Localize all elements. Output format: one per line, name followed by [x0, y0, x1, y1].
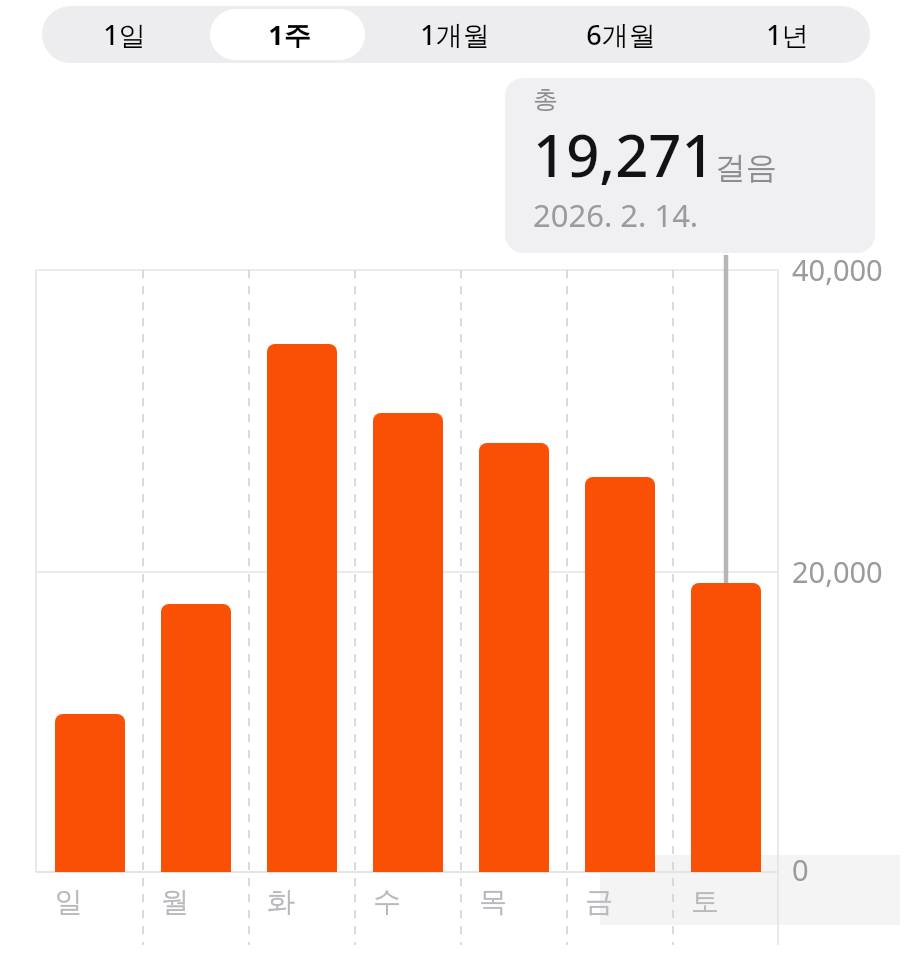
staticText: 0: [792, 850, 809, 889]
button[interactable]: 1년: [704, 6, 870, 63]
staticText: 월: [161, 884, 189, 919]
staticText: 일: [55, 884, 83, 919]
staticText: 1개월: [420, 16, 490, 53]
staticText: 화: [267, 884, 295, 919]
button[interactable]: 1주: [207, 6, 372, 63]
staticText: 토: [691, 884, 719, 919]
button[interactable]: 6개월: [538, 6, 704, 63]
staticText: 20,000: [792, 552, 883, 591]
staticText: 걸음: [715, 148, 777, 187]
button[interactable]: 1일: [42, 6, 207, 63]
button[interactable]: 총 19,271 걸음, 2026. 2. 14.: [505, 78, 875, 253]
staticText: 40,000: [792, 250, 883, 289]
staticText: 수: [373, 884, 401, 919]
staticText: 19,271: [533, 115, 715, 194]
staticText: 금: [585, 884, 613, 919]
staticText: 1주: [268, 16, 311, 53]
staticText: 총: [533, 84, 558, 115]
staticText: 목: [479, 884, 507, 919]
staticText: 2026. 2. 14.: [533, 194, 699, 236]
staticText: 1일: [103, 16, 146, 53]
staticText: 1년: [766, 16, 809, 53]
button[interactable]: 1개월: [372, 6, 538, 63]
staticText: 6개월: [586, 16, 656, 53]
